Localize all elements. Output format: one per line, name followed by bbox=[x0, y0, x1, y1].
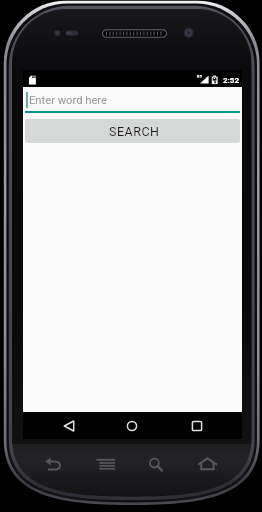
button[interactable]: Search bbox=[136, 450, 176, 480]
staticText: SEARCH bbox=[109, 124, 160, 139]
button[interactable]: Back bbox=[32, 450, 74, 480]
button[interactable]: Home bbox=[109, 412, 154, 439]
button[interactable]: Back bbox=[46, 412, 91, 439]
button[interactable]: SEARCH bbox=[25, 119, 240, 143]
staticText: Enter word here bbox=[29, 94, 107, 107]
button[interactable]: Recent apps bbox=[174, 412, 219, 439]
button[interactable]: Home bbox=[188, 450, 228, 480]
staticText: 2:52 bbox=[223, 76, 240, 85]
button[interactable]: Menu bbox=[85, 450, 127, 480]
